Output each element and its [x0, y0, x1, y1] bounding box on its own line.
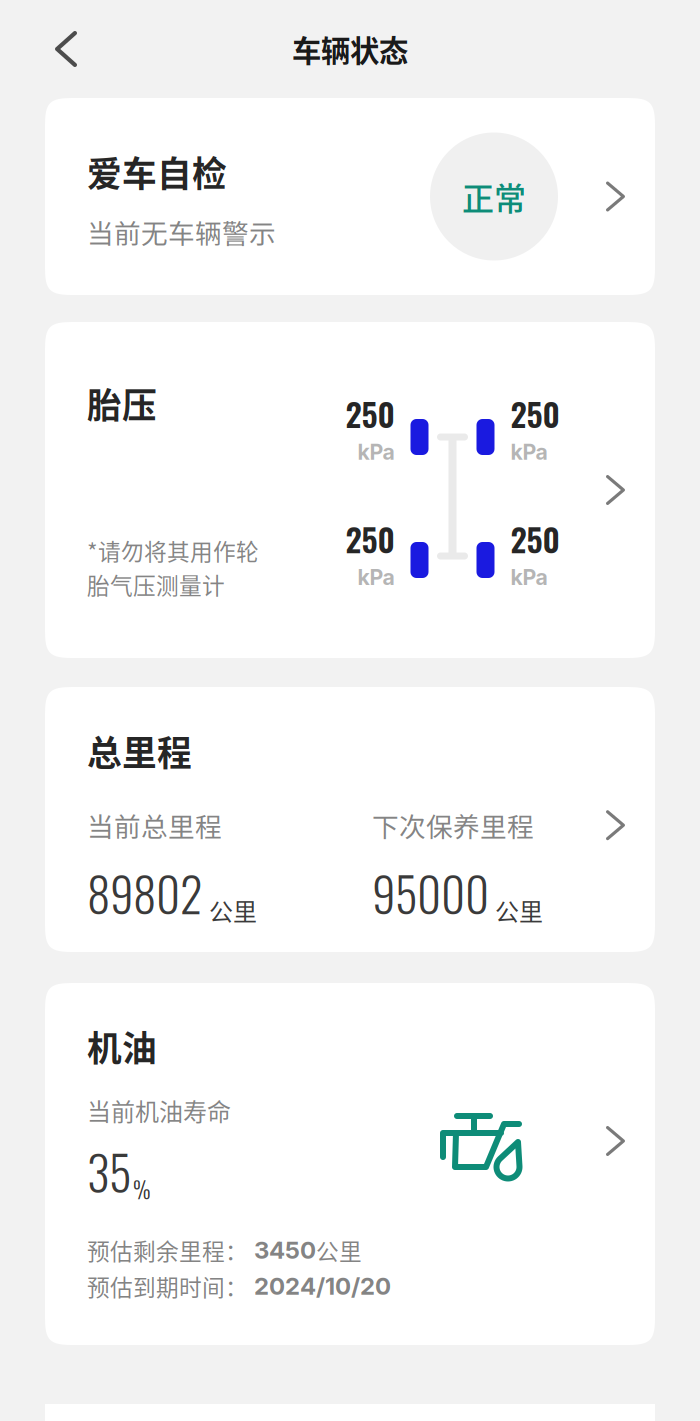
button[interactable]: 机油: [45, 983, 655, 1345]
staticText: 95000: [372, 858, 489, 928]
staticText: 爱车自检: [87, 146, 227, 197]
staticText: 机油: [87, 1021, 157, 1071]
staticText: 胎气压测量计: [87, 568, 225, 601]
staticText: 公里: [316, 1234, 362, 1266]
button[interactable]: Back: [38, 19, 94, 79]
button[interactable]: 胎压: [45, 322, 655, 658]
staticText: 当前总里程: [87, 806, 222, 844]
staticText: kPa: [510, 439, 547, 465]
staticText: 250: [345, 515, 394, 562]
staticText: 胎压: [87, 378, 157, 428]
staticText: 3450: [248, 1235, 316, 1264]
button[interactable]: 总里程: [45, 687, 655, 952]
staticText: 35: [87, 1137, 131, 1206]
staticText: 250: [510, 515, 559, 562]
staticText: 2024/10/20: [248, 1271, 391, 1300]
staticText: 当前无车辆警示: [87, 212, 276, 251]
staticText: 当前机油寿命: [87, 1093, 231, 1128]
staticText: kPa: [510, 564, 547, 590]
staticText: *请勿将其用作轮: [87, 534, 259, 567]
staticText: 车辆状态: [292, 28, 408, 70]
staticText: 250: [345, 390, 394, 437]
staticText: 预估剩余里程：: [87, 1234, 248, 1266]
staticText: 公里: [495, 893, 543, 928]
staticText: kPa: [357, 439, 394, 465]
staticText: 250: [510, 390, 559, 437]
staticText: 公里: [209, 893, 257, 928]
staticText: 总里程: [87, 726, 192, 776]
staticText: kPa: [357, 564, 394, 590]
button[interactable]: 爱车自检: [45, 98, 655, 295]
staticText: 下次保养里程: [372, 806, 534, 844]
staticText: 89802: [87, 858, 203, 928]
staticText: 正常: [462, 173, 526, 220]
staticText: %: [133, 1171, 151, 1206]
staticText: 预估到期时间：: [87, 1270, 248, 1302]
